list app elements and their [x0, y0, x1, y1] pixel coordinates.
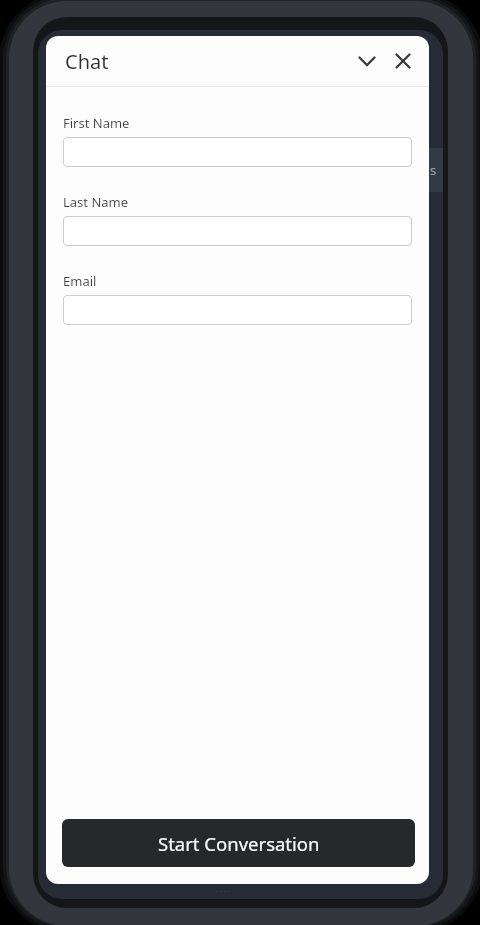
button[interactable] [63, 295, 412, 325]
staticText: Start Conversation [158, 831, 320, 856]
button[interactable] [63, 137, 412, 167]
staticText: Email [63, 272, 97, 290]
button[interactable] [63, 216, 412, 246]
button[interactable] [350, 44, 384, 78]
staticText: First Name [63, 114, 130, 132]
staticText: Last Name [63, 193, 129, 211]
button[interactable] [386, 44, 420, 78]
staticText: s [430, 161, 437, 179]
button[interactable]: Start Conversation [62, 819, 415, 867]
staticText: Chat [65, 48, 109, 75]
